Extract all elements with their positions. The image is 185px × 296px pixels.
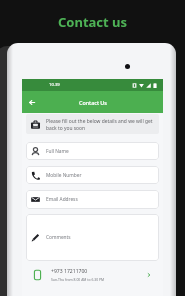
button[interactable]: Email Address (26, 190, 159, 209)
staticText: Contact Us (79, 99, 107, 106)
button[interactable]: Back (25, 95, 39, 109)
staticText: Full Name (46, 148, 69, 155)
staticText: Email Address (46, 196, 78, 203)
button[interactable]: Mobile Number (26, 166, 159, 184)
staticText: +973 17211700 (51, 268, 88, 275)
button[interactable]: Full Name (26, 142, 159, 160)
staticText: Sun-Thu from 8.00 AM to 6.30 PM (51, 277, 105, 282)
staticText: 10.39 (49, 82, 60, 88)
staticText: Please fill out the below details and we… (46, 118, 155, 131)
button[interactable]: +973 17211700 (26, 264, 159, 286)
button[interactable]: Comments (26, 214, 159, 261)
staticText: Mobile Number (46, 172, 82, 179)
staticText: Comments (46, 234, 71, 241)
staticText: Contact us (58, 13, 128, 31)
